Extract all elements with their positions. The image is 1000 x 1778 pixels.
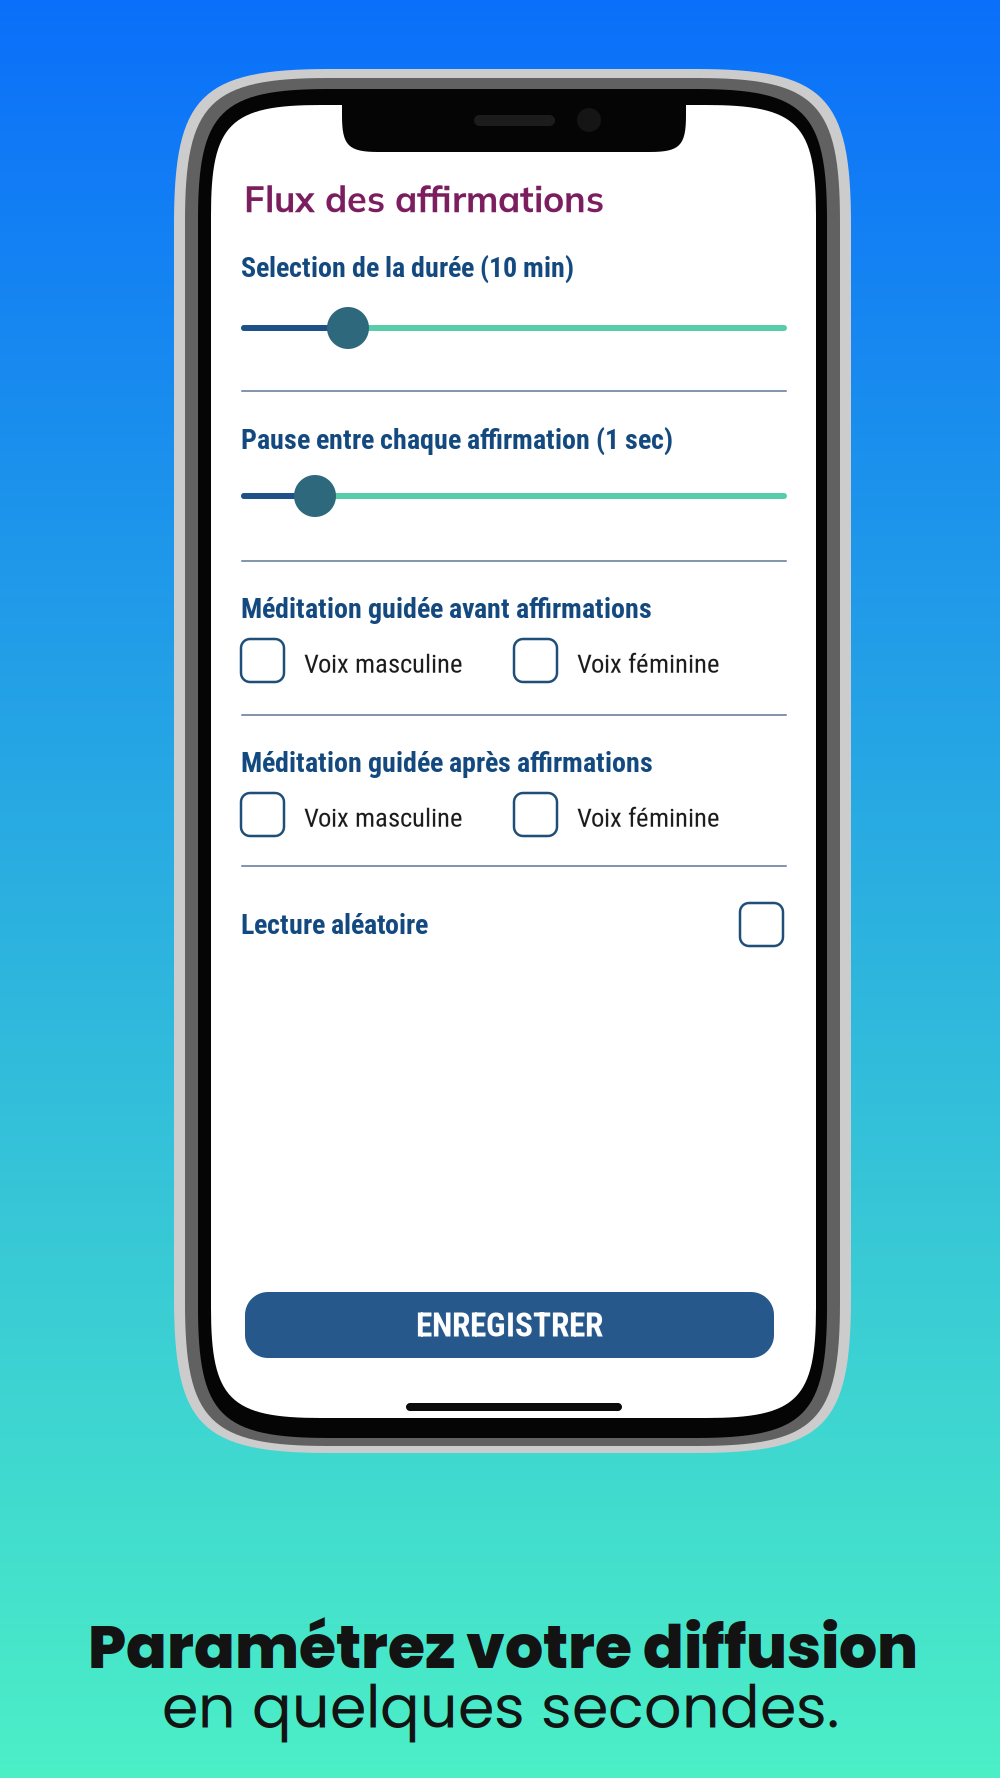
staticText: Selection de la durée (10 min) xyxy=(241,251,574,284)
staticText: Méditation guidée après affirmations xyxy=(241,746,653,779)
staticText: Voix masculine xyxy=(304,802,463,833)
staticText: Lecture aléatoire xyxy=(241,908,428,941)
button[interactable]: Lecture aléatoire xyxy=(211,105,816,1418)
staticText: Voix masculine xyxy=(304,648,463,679)
staticText: Pause entre chaque affirmation (1 sec) xyxy=(241,423,673,456)
button[interactable]: Voix féminine xyxy=(211,105,816,1418)
button[interactable]: Voix masculine xyxy=(211,105,816,1418)
button[interactable]: Voix masculine xyxy=(211,105,816,1418)
staticText: Voix féminine xyxy=(577,648,720,679)
button[interactable]: Voix féminine xyxy=(211,105,816,1418)
staticText: Paramétrez votre diffusion xyxy=(88,1605,918,1689)
staticText: en quelques secondes. xyxy=(162,1666,839,1748)
staticText: Voix féminine xyxy=(577,802,720,833)
staticText: ENREGISTRER xyxy=(416,1305,603,1345)
staticText: Méditation guidée avant affirmations xyxy=(241,592,652,625)
button[interactable]: ENREGISTRER xyxy=(245,1292,774,1358)
staticText: Flux des affirmations xyxy=(244,176,604,221)
